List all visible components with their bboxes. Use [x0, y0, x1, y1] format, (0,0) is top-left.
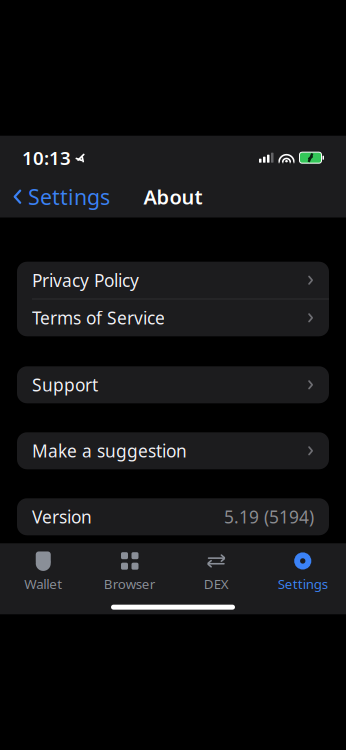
staticText: 10:13 [22, 145, 71, 170]
button[interactable]: Wallet [0, 543, 86, 597]
staticText: Settings [278, 575, 328, 593]
button[interactable]: Terms of Service [17, 299, 329, 336]
staticText: Version [32, 505, 92, 528]
button[interactable]: Browser [86, 543, 173, 597]
staticText: DEX [204, 575, 229, 593]
staticText: Browser [104, 575, 156, 593]
button[interactable]: Make a suggestion [17, 432, 329, 469]
staticText: Make a suggestion [32, 439, 187, 462]
button[interactable]: Settings [259, 543, 346, 597]
staticText: Wallet [24, 575, 62, 593]
button[interactable]: Settings [2, 176, 120, 217]
staticText: 5.19 (5194) [224, 505, 314, 528]
staticText: Terms of Service [32, 306, 165, 329]
button[interactable]: Support [17, 366, 329, 403]
staticText: Settings [28, 182, 110, 211]
button[interactable]: DEX [173, 543, 259, 597]
staticText: Privacy Policy [32, 269, 139, 292]
button[interactable]: Privacy Policy [17, 262, 329, 299]
staticText: About [143, 183, 202, 210]
staticText: Support [32, 373, 98, 396]
